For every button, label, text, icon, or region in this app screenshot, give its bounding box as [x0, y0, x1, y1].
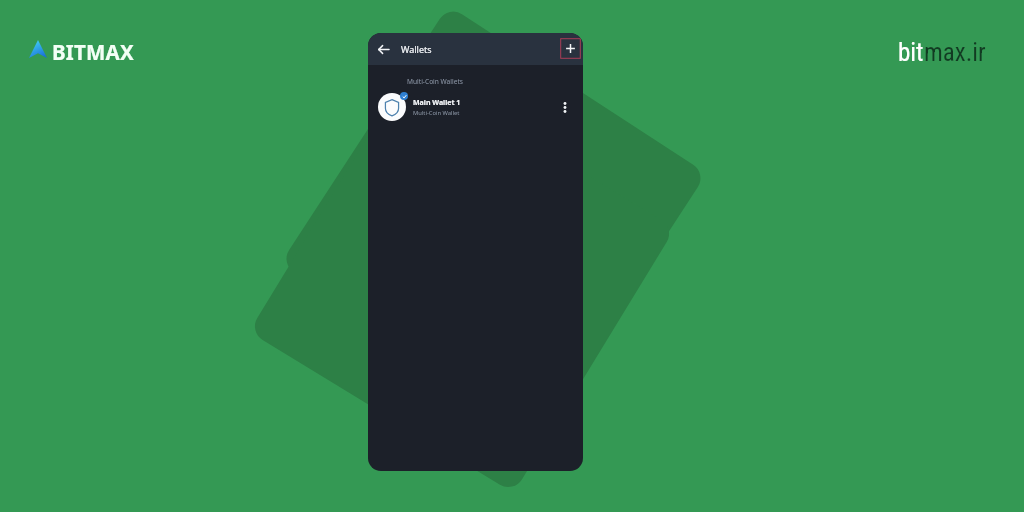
staticText: bit	[898, 38, 924, 67]
button[interactable]: More options	[555, 97, 575, 117]
button[interactable]: Add wallet	[560, 38, 581, 59]
staticText: max.ir	[924, 38, 986, 67]
button[interactable]: Back	[373, 39, 393, 59]
button[interactable]: Main Wallet 1	[368, 88, 583, 122]
staticText: Multi-Coin Wallet	[413, 109, 460, 117]
staticText: BITMAX	[52, 38, 134, 66]
staticText: Wallets	[401, 43, 432, 55]
staticText: Main Wallet 1	[413, 98, 461, 108]
staticText: Multi-Coin Wallets	[407, 77, 463, 86]
